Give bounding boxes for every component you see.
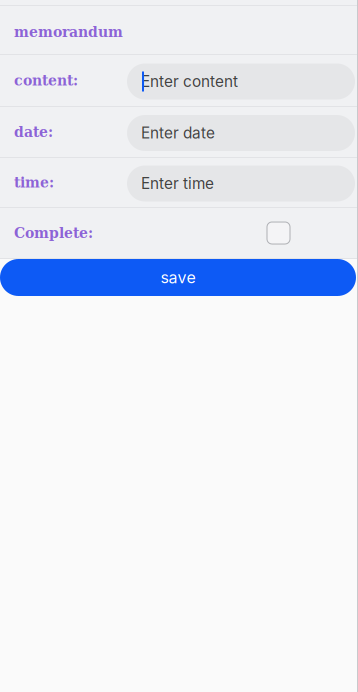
staticText: Enter date [141, 124, 215, 142]
button[interactable]: save [0, 259, 356, 296]
staticText: time: [14, 174, 54, 191]
button[interactable]: Enter time [127, 165, 355, 201]
staticText: content: [14, 72, 78, 89]
button[interactable]: Enter date [127, 115, 355, 151]
button[interactable]: Enter content [127, 63, 355, 99]
staticText: save [160, 268, 195, 287]
staticText: Enter time [141, 174, 214, 193]
staticText: Complete: [14, 225, 93, 241]
staticText: memorandum [14, 24, 123, 40]
staticText: date: [14, 124, 53, 140]
staticText: Enter content [141, 72, 238, 91]
button[interactable]: Complete [267, 222, 290, 244]
